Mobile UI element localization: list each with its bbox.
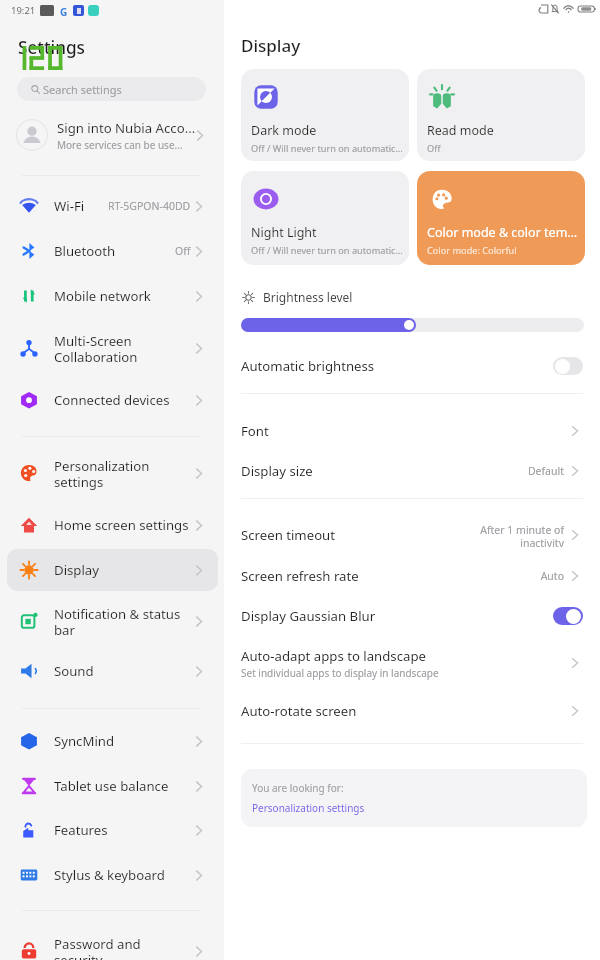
staticText: settings — [54, 473, 104, 491]
staticText: Auto — [540, 569, 564, 583]
button[interactable]: SyncMind — [7, 720, 218, 762]
staticText: More services can be use... — [57, 138, 183, 152]
staticText: Personalization — [54, 457, 150, 475]
staticText: Display size — [241, 462, 313, 480]
staticText: 19:21 — [11, 4, 36, 17]
staticText: Dark mode — [251, 122, 317, 139]
staticText: Connected devices — [54, 391, 196, 409]
staticText: Sign into Nubia Acco... — [57, 119, 196, 137]
staticText: Personalization settings — [252, 801, 365, 815]
staticText: Display — [54, 561, 196, 579]
staticText: Night Light — [251, 224, 317, 241]
button[interactable]: Screen timeout — [224, 523, 583, 547]
button[interactable]: Dark mode — [241, 69, 409, 161]
button[interactable]: Connected devices — [7, 379, 218, 421]
staticText: Display Gaussian Blur — [241, 607, 553, 625]
staticText: Auto-adapt apps to landscape — [241, 647, 426, 665]
staticText: security — [54, 951, 103, 960]
staticText: Auto-rotate screen — [241, 702, 357, 720]
staticText: Stylus & keyboard — [54, 866, 196, 884]
staticText: Font — [241, 422, 269, 440]
button[interactable]: Password and — [7, 923, 218, 960]
button[interactable]: Auto-rotate screen — [224, 699, 583, 723]
staticText: Password and — [54, 935, 141, 953]
button[interactable]: Automatic brightness — [224, 354, 583, 378]
staticText: Screen timeout — [241, 526, 336, 544]
staticText: Off — [427, 142, 441, 155]
staticText: Sound — [54, 662, 196, 680]
staticText: Display — [241, 34, 301, 57]
button[interactable]: Display Gaussian Blur — [224, 604, 583, 628]
staticText: Multi-Screen — [54, 332, 132, 350]
button[interactable]: Auto-adapt apps to landscape — [224, 646, 583, 680]
staticText: bar — [54, 621, 75, 639]
staticText: Search settings — [43, 82, 122, 97]
staticText: Bluetooth — [54, 242, 175, 260]
button[interactable]: Search settings — [17, 77, 206, 101]
staticText: RT-5GPON-40DD — [108, 199, 191, 213]
button[interactable]: Tablet use balance — [7, 765, 218, 807]
staticText: Set individual apps to display in landsc… — [241, 666, 439, 680]
button[interactable]: Display — [7, 549, 218, 591]
staticText: Mobile network — [54, 287, 196, 305]
button[interactable]: Mobile network — [7, 275, 218, 317]
button[interactable]: Home screen settings — [7, 504, 218, 546]
staticText: Features — [54, 821, 196, 839]
staticText: Color mode: Colorful — [427, 244, 517, 257]
staticText: Read mode — [427, 122, 494, 139]
button[interactable]: Screen refresh rate — [224, 564, 583, 588]
staticText: Settings — [18, 36, 85, 59]
button[interactable]: Wi-Fi — [7, 185, 218, 227]
staticText: Collaboration — [54, 348, 138, 366]
button[interactable]: Multi-Screen — [7, 320, 218, 376]
staticText: SyncMind — [54, 732, 196, 750]
button[interactable]: Features — [7, 809, 218, 851]
staticText: Default — [527, 464, 564, 478]
button[interactable]: Font — [224, 419, 583, 443]
button[interactable]: Bluetooth — [7, 230, 218, 272]
staticText: Home screen settings — [54, 516, 196, 534]
button[interactable]: Display size — [224, 459, 583, 483]
button[interactable]: Stylus & keyboard — [7, 854, 218, 896]
staticText: Screen refresh rate — [241, 567, 359, 585]
staticText: Brightness level — [263, 289, 353, 305]
button[interactable]: You are looking for: — [241, 769, 587, 827]
staticText: Color mode & color tempe... — [427, 224, 583, 241]
button[interactable]: Personalization — [7, 445, 218, 501]
staticText: You are looking for: — [252, 781, 344, 795]
button[interactable]: Sound — [7, 650, 218, 692]
staticText: Off — [175, 244, 191, 258]
button[interactable]: Notification & status — [7, 593, 218, 649]
staticText: G — [60, 5, 68, 16]
staticText: Wi-Fi — [54, 197, 108, 215]
button[interactable]: Sign into Nubia Acco... — [0, 112, 224, 158]
button[interactable]: Read mode — [417, 69, 585, 161]
staticText: Automatic brightness — [241, 357, 553, 375]
staticText: Off / Will never turn on automatica... — [251, 142, 407, 155]
button[interactable]: Night Light — [241, 171, 409, 265]
button[interactable]: Color mode & color tempe... — [417, 171, 585, 265]
staticText: After 1 minute of inactivity — [480, 523, 564, 547]
staticText: Tablet use balance — [54, 777, 196, 795]
staticText: Notification & status — [54, 605, 181, 623]
staticText: Off / Will never turn on automatica... — [251, 244, 407, 257]
